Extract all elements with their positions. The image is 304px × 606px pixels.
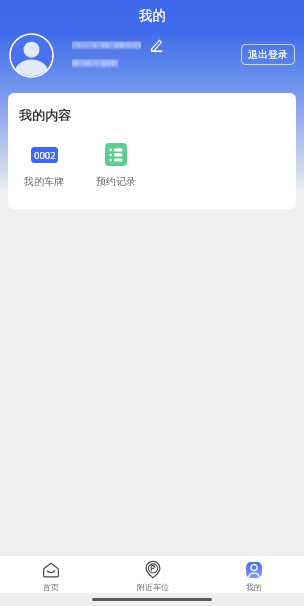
button[interactable]: 0002 <box>8 143 80 188</box>
staticText: 首页 <box>43 582 59 592</box>
button[interactable]: Edit profile <box>150 39 163 52</box>
staticText: 我的 <box>246 582 262 592</box>
staticText: 我的 <box>139 7 166 24</box>
staticText: 我的内容 <box>19 107 71 123</box>
button[interactable]: 退出登录 <box>241 44 295 65</box>
staticText: 我的车牌 <box>24 175 64 188</box>
button[interactable]: 首页 <box>0 556 102 593</box>
button[interactable]: 附近车位 <box>102 556 203 593</box>
button[interactable]: 我的 <box>203 556 304 593</box>
button[interactable]: 预约记录 <box>80 143 152 188</box>
staticText: 预约记录 <box>96 175 136 188</box>
staticText: 退出登录 <box>248 48 288 61</box>
staticText: 附近车位 <box>137 582 169 592</box>
staticText: 0002 <box>34 149 56 162</box>
